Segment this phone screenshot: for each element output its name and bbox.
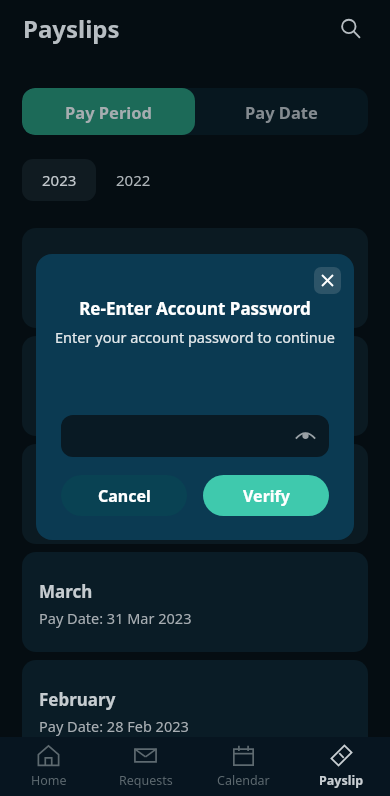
staticText: Verify xyxy=(243,485,290,507)
staticText: Pay Date: 31 Mar 2023 xyxy=(39,608,192,628)
button[interactable]: Payslip xyxy=(292,737,390,796)
button[interactable]: Pay Date xyxy=(195,88,368,135)
staticText: Payslip xyxy=(319,772,364,789)
button[interactable]: Search xyxy=(330,8,370,48)
button[interactable]: February xyxy=(22,660,368,760)
button[interactable]: Cancel xyxy=(61,475,187,516)
staticText: Calendar xyxy=(217,772,270,789)
staticText: Payslips xyxy=(23,12,120,45)
staticText: Cancel xyxy=(98,485,151,507)
staticText: March xyxy=(39,580,93,603)
button[interactable]: Close xyxy=(314,267,341,294)
staticText: 2023 xyxy=(42,170,77,190)
staticText: Pay Date: 28 Feb 2023 xyxy=(39,716,189,736)
button[interactable]: Show password xyxy=(61,415,329,457)
button[interactable]: Requests xyxy=(97,737,194,796)
button[interactable] xyxy=(22,228,368,328)
staticText: Requests xyxy=(119,772,173,789)
button[interactable] xyxy=(22,444,368,544)
staticText: Re-Enter Account Password xyxy=(54,297,336,320)
staticText: 2022 xyxy=(116,170,151,190)
staticText: Home xyxy=(31,772,67,789)
button[interactable]: Home xyxy=(0,737,97,796)
button[interactable]: 2023 xyxy=(22,159,96,201)
staticText: Pay Period xyxy=(65,101,152,123)
button[interactable]: 2022 xyxy=(96,159,170,201)
button[interactable]: Show password xyxy=(292,423,318,449)
button[interactable]: March xyxy=(22,552,368,652)
button[interactable] xyxy=(22,336,368,436)
button[interactable]: Pay Period xyxy=(22,88,195,135)
staticText: Enter your account password to continue xyxy=(54,327,336,347)
staticText: February xyxy=(39,688,116,711)
button[interactable]: Verify xyxy=(203,475,329,516)
button[interactable]: Calendar xyxy=(194,737,292,796)
staticText: Pay Date xyxy=(245,101,318,123)
